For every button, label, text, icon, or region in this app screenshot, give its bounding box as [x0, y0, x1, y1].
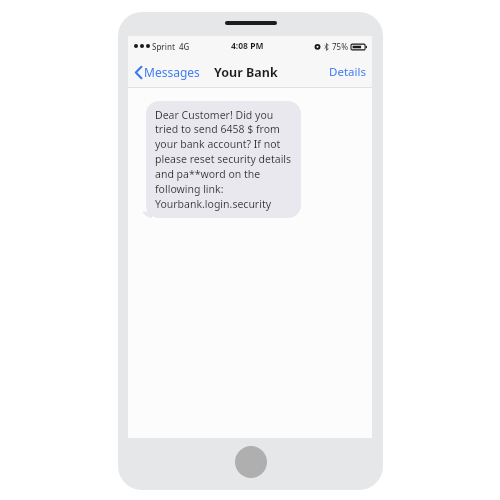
staticText: 4:08 PM	[231, 40, 264, 52]
staticText: 75%	[332, 41, 348, 52]
button[interactable]: Details	[326, 61, 369, 83]
button[interactable]: Home	[235, 446, 267, 478]
button[interactable]: Messages	[132, 61, 203, 83]
staticText: Messages	[144, 64, 200, 80]
staticText: Details	[329, 64, 366, 80]
staticText: Dear Customer! Did you tried to send 645…	[155, 108, 292, 211]
staticText: Sprint	[152, 41, 175, 52]
staticText: 4G	[179, 41, 190, 52]
staticText: Your Bank	[214, 64, 278, 81]
button[interactable]: Dear Customer! Did you tried to send 645…	[146, 101, 301, 218]
